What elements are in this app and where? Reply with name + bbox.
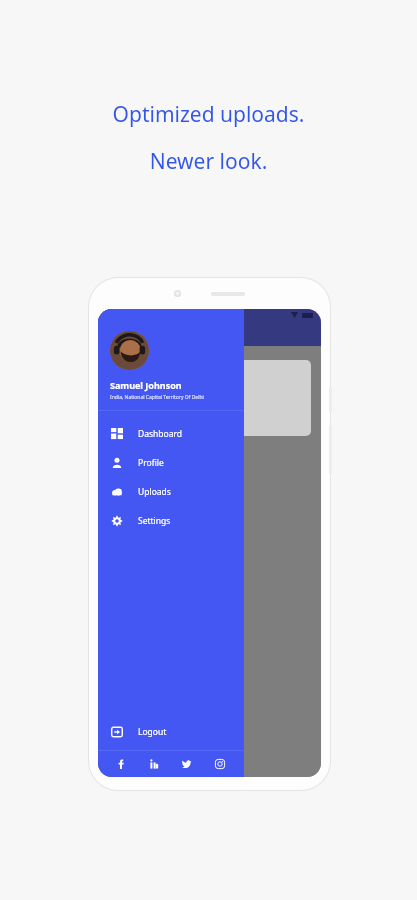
staticText: Optimized uploads. bbox=[0, 100, 417, 129]
staticText: India, National Capital Territory Of Del… bbox=[110, 394, 204, 401]
button[interactable]: Settings bbox=[98, 506, 244, 535]
staticText: Uploads bbox=[138, 486, 171, 498]
button[interactable]: Instagram bbox=[211, 755, 229, 773]
staticText: o will send bbox=[136, 391, 166, 399]
staticText: there is a bbox=[136, 404, 162, 412]
staticText: Settings bbox=[138, 515, 171, 527]
staticText: Logout bbox=[138, 726, 167, 738]
staticText: Samuel Johnson bbox=[110, 379, 182, 391]
button[interactable]: Profile bbox=[98, 448, 244, 477]
button[interactable]: Twitter bbox=[178, 755, 196, 773]
staticText: Dashboard bbox=[138, 428, 183, 440]
button[interactable]: LinkedIn bbox=[146, 755, 164, 773]
button[interactable]: Facebook bbox=[113, 755, 131, 773]
staticText: Newer look. bbox=[0, 147, 417, 176]
button[interactable]: Uploads bbox=[98, 477, 244, 506]
button[interactable]: Logout bbox=[98, 717, 244, 746]
staticText: there are no bbox=[136, 378, 171, 386]
staticText: Profile bbox=[138, 457, 164, 469]
button[interactable]: Dashboard bbox=[98, 419, 244, 448]
